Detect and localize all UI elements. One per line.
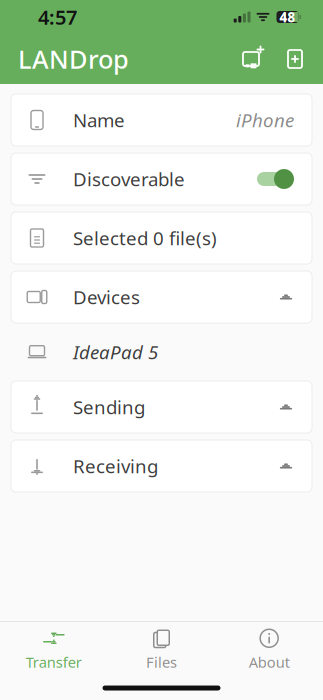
button[interactable]: Transfer [0,620,108,678]
button[interactable]: IdeaPad 5 [11,330,312,374]
button[interactable]: Selected 0 file(s) [11,212,312,264]
staticText: Discoverable [73,167,185,191]
button[interactable]: Add photo [229,37,273,81]
staticText: Receiving [73,454,158,478]
button[interactable]: Sending [11,381,312,433]
staticText: Files [146,652,177,672]
staticText: 4:57 [38,4,77,30]
staticText: Transfer [26,652,82,672]
staticText: LANDrop [18,42,129,76]
button[interactable]: Discoverable [11,153,312,205]
staticText: iPhone [236,108,294,132]
staticText: Name [73,108,125,132]
staticText: Selected 0 file(s) [73,226,217,250]
staticText: IdeaPad 5 [73,340,158,364]
button[interactable]: Name [11,94,312,146]
staticText: 48 [279,8,295,26]
button[interactable]: Receiving [11,440,312,492]
staticText: Devices [73,285,140,309]
staticText: About [249,652,290,672]
staticText: Sending [73,395,145,419]
button[interactable]: Devices [11,271,312,323]
button[interactable]: About [215,620,323,678]
button[interactable]: Files [108,620,215,678]
staticText: 48 [279,8,295,26]
button[interactable]: Add file [273,37,317,81]
